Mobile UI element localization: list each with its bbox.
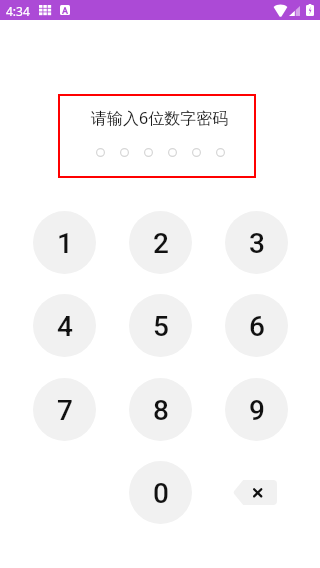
staticText: 7	[57, 394, 73, 427]
button[interactable]: 6	[225, 294, 288, 357]
button[interactable]: 1	[33, 211, 96, 274]
staticText: 0	[153, 477, 169, 510]
button[interactable]: 3	[225, 211, 288, 274]
staticText: 9	[249, 394, 265, 427]
button[interactable]: 0	[129, 461, 192, 524]
staticText: 5	[153, 310, 169, 343]
button[interactable]: 7	[33, 378, 96, 441]
staticText: 2	[153, 227, 169, 260]
button[interactable]: 5	[129, 294, 192, 357]
staticText: 8	[153, 394, 169, 427]
staticText: 4	[57, 310, 73, 343]
button[interactable]: 2	[129, 211, 192, 274]
staticText: 6	[249, 310, 265, 343]
button[interactable]: 9	[225, 378, 288, 441]
staticText: 1	[57, 227, 73, 260]
button[interactable]: Backspace	[233, 480, 277, 505]
button[interactable]: 8	[129, 378, 192, 441]
staticText: 3	[249, 227, 265, 260]
staticText: 请输入6位数字密码	[91, 107, 229, 129]
button[interactable]: 4	[33, 294, 96, 357]
staticText: 4:34	[6, 3, 30, 19]
